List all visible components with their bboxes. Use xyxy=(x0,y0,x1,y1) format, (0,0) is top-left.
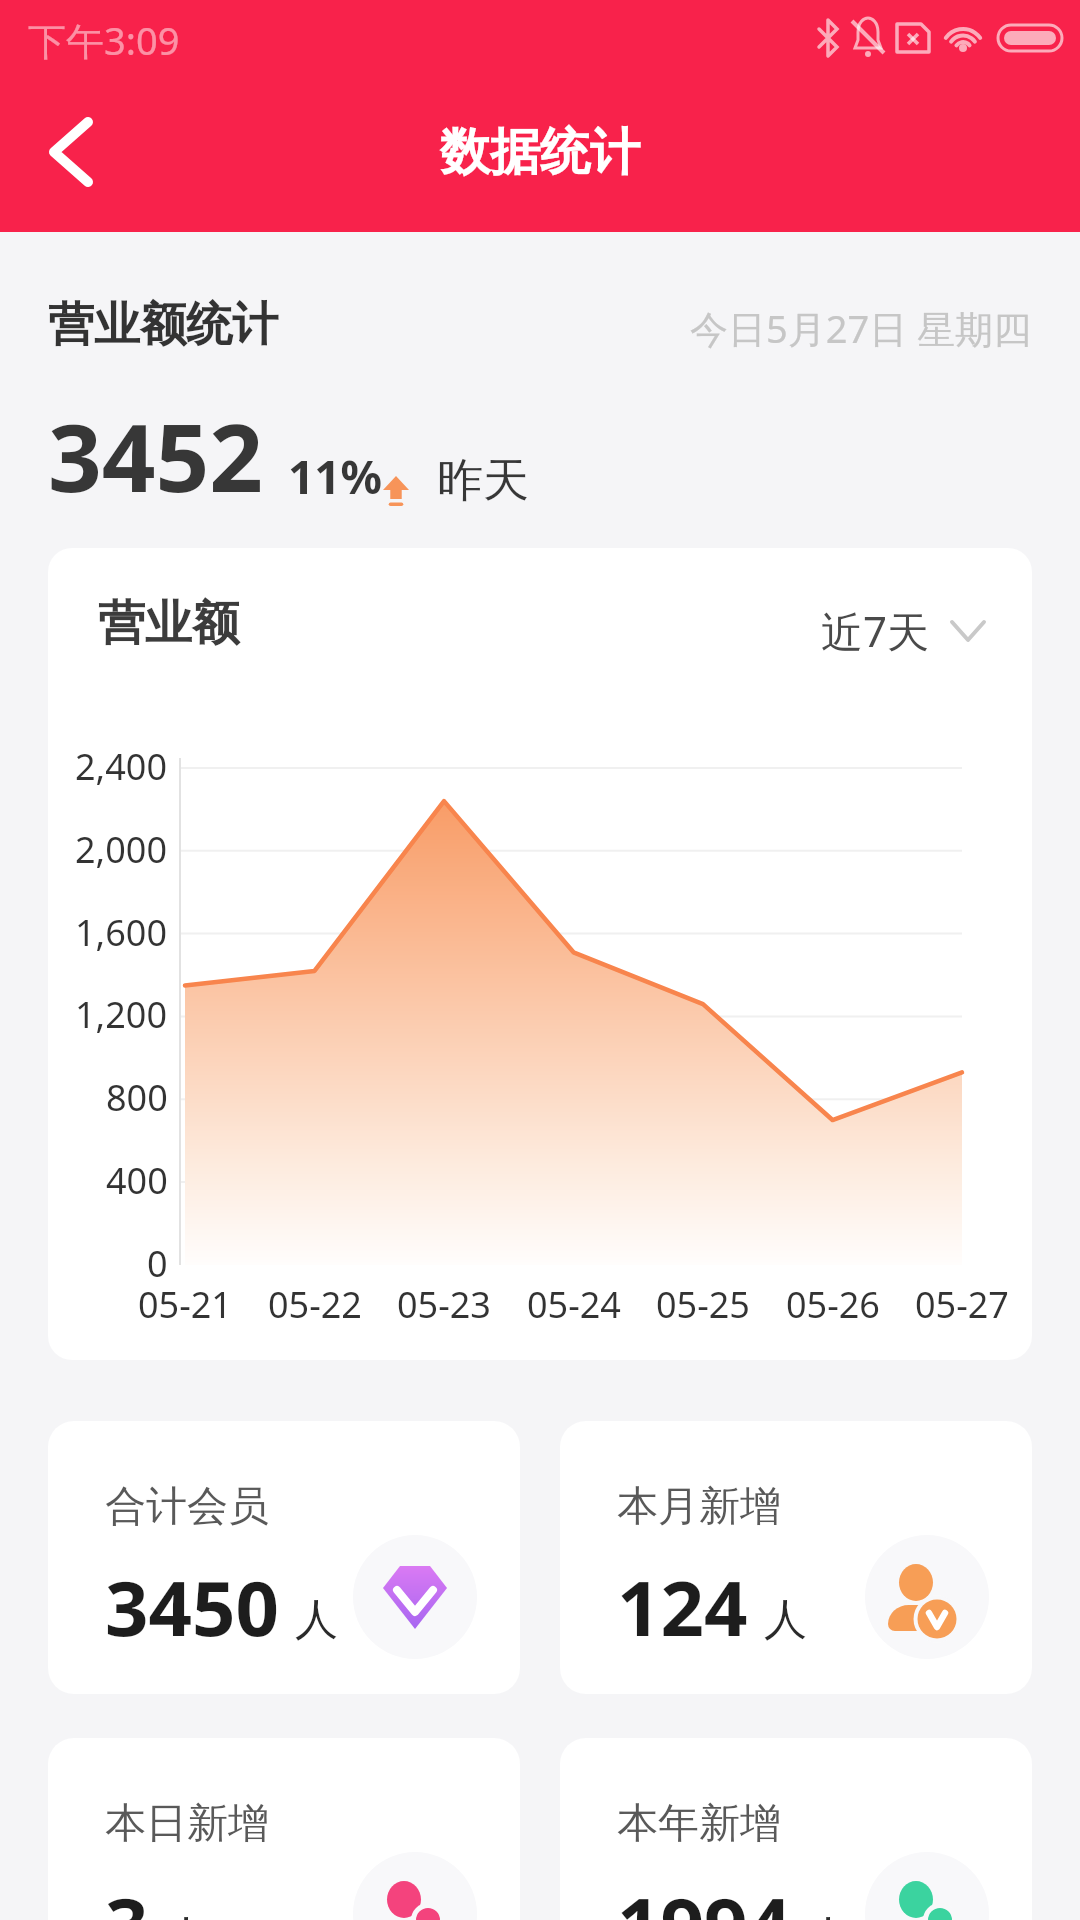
button[interactable]: 近7天 xyxy=(821,602,986,659)
staticText: 营业额 xyxy=(98,594,239,653)
staticText: 昨天 xyxy=(437,452,529,510)
staticText: 合计会员 xyxy=(105,1481,269,1533)
staticText: 1,200 xyxy=(75,990,168,1039)
staticText: 0 xyxy=(147,1239,168,1288)
staticText: 11% xyxy=(288,445,383,508)
staticText: 下午3:09 xyxy=(28,14,180,66)
staticText: 05-24 xyxy=(527,1280,621,1329)
staticText: 05-23 xyxy=(397,1280,491,1329)
staticText: 人 xyxy=(295,1593,338,1647)
staticText: 2,000 xyxy=(75,825,168,874)
button[interactable]: 本日新增 xyxy=(48,1738,520,1920)
staticText: 05-25 xyxy=(656,1280,750,1329)
staticText: 近7天 xyxy=(821,602,930,659)
staticText: 本月新增 xyxy=(617,1481,781,1533)
staticText: 400 xyxy=(106,1156,168,1205)
staticText: 3450 xyxy=(105,1555,279,1659)
staticText: 2,400 xyxy=(75,742,168,791)
staticText: 05-26 xyxy=(786,1280,880,1329)
button[interactable]: 合计会员 xyxy=(48,1421,520,1694)
staticText: 人 xyxy=(807,1910,850,1920)
staticText: 人 xyxy=(165,1910,208,1920)
staticText: 数据统计 xyxy=(440,121,640,184)
staticText: 营业额统计 xyxy=(48,296,278,354)
button[interactable] xyxy=(30,112,110,192)
staticText: 人 xyxy=(764,1593,807,1647)
staticText: 今日5月27日 星期四 xyxy=(690,302,1032,354)
staticText: 800 xyxy=(106,1073,168,1122)
staticText: 05-27 xyxy=(915,1280,1009,1329)
staticText: 1994 xyxy=(617,1872,791,1920)
staticText: 05-22 xyxy=(268,1280,362,1329)
staticText: 124 xyxy=(617,1555,748,1659)
staticText: 本日新增 xyxy=(105,1798,269,1850)
staticText: 3452 xyxy=(48,392,264,520)
staticText: 本年新增 xyxy=(617,1798,781,1850)
staticText: 3 xyxy=(105,1872,149,1920)
staticText: 1,600 xyxy=(75,908,168,957)
staticText: 05-21 xyxy=(138,1280,232,1329)
button[interactable]: 本年新增 xyxy=(560,1738,1032,1920)
button[interactable]: 本月新增 xyxy=(560,1421,1032,1694)
